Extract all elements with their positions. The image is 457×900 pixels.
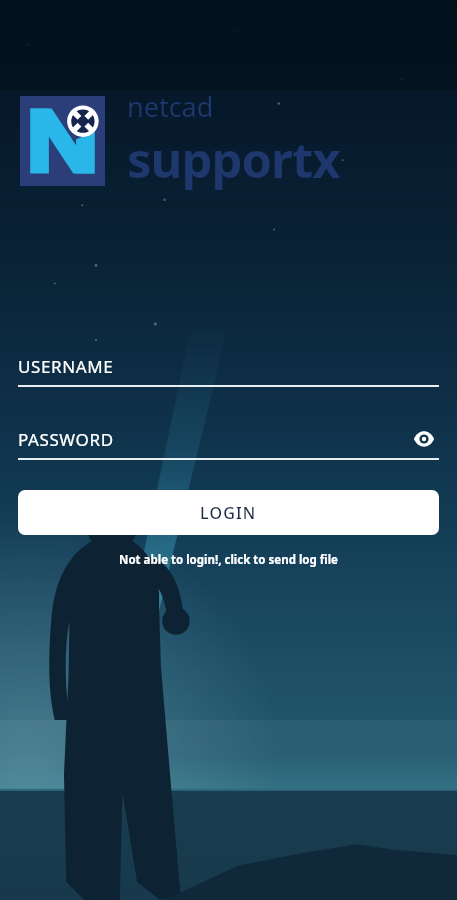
staticText: LOGIN: [200, 502, 257, 524]
staticText: USERNAME: [18, 355, 114, 378]
button[interactable]: PASSWORD: [18, 425, 439, 460]
staticText: PASSWORD: [18, 428, 114, 451]
staticText: netcad: [127, 88, 214, 125]
button[interactable]: Show password: [409, 425, 439, 453]
staticText: supportx: [127, 126, 340, 193]
staticText: Not able to login!, click to send log fi…: [119, 552, 338, 568]
button[interactable]: USERNAME: [18, 352, 439, 387]
button[interactable]: Not able to login!, click to send log fi…: [18, 552, 439, 568]
button[interactable]: LOGIN: [18, 490, 439, 535]
